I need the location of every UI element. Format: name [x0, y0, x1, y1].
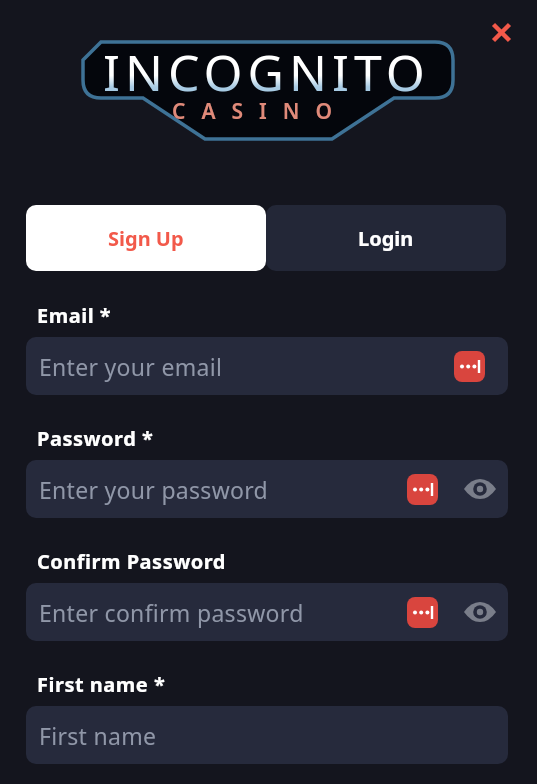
staticText: CASINO	[172, 97, 349, 126]
staticText: Enter your password	[39, 474, 269, 505]
staticText: Enter confirm password	[39, 597, 304, 628]
button[interactable]	[489, 20, 514, 45]
staticText: Login	[358, 225, 414, 252]
button[interactable]: Enter your password	[26, 460, 508, 518]
staticText: Password *	[37, 425, 154, 452]
button[interactable]: First name	[26, 706, 508, 764]
staticText: First name *	[37, 671, 166, 698]
button[interactable]	[464, 473, 496, 505]
staticText: Email *	[37, 302, 112, 329]
staticText: INCOGNITO	[103, 38, 430, 106]
staticText: Confirm Password	[37, 548, 226, 575]
button[interactable]: Sign Up	[26, 205, 266, 271]
button[interactable]: Enter confirm password	[26, 583, 508, 641]
button[interactable]: Enter your email	[26, 337, 508, 395]
button[interactable]	[464, 596, 496, 628]
staticText: First name	[39, 720, 157, 751]
button[interactable]: Login	[266, 205, 506, 271]
staticText: Sign Up	[108, 225, 184, 252]
staticText: Enter your email	[39, 351, 223, 382]
